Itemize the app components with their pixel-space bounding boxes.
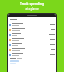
staticText: at a glance bbox=[0, 7, 64, 11]
staticText: Track spending bbox=[0, 2, 64, 6]
button[interactable] bbox=[8, 37, 56, 42]
button[interactable] bbox=[8, 32, 56, 37]
button[interactable] bbox=[8, 27, 56, 32]
button[interactable] bbox=[8, 22, 56, 27]
button[interactable] bbox=[8, 52, 56, 57]
button[interactable] bbox=[8, 42, 56, 47]
button[interactable] bbox=[8, 47, 56, 52]
